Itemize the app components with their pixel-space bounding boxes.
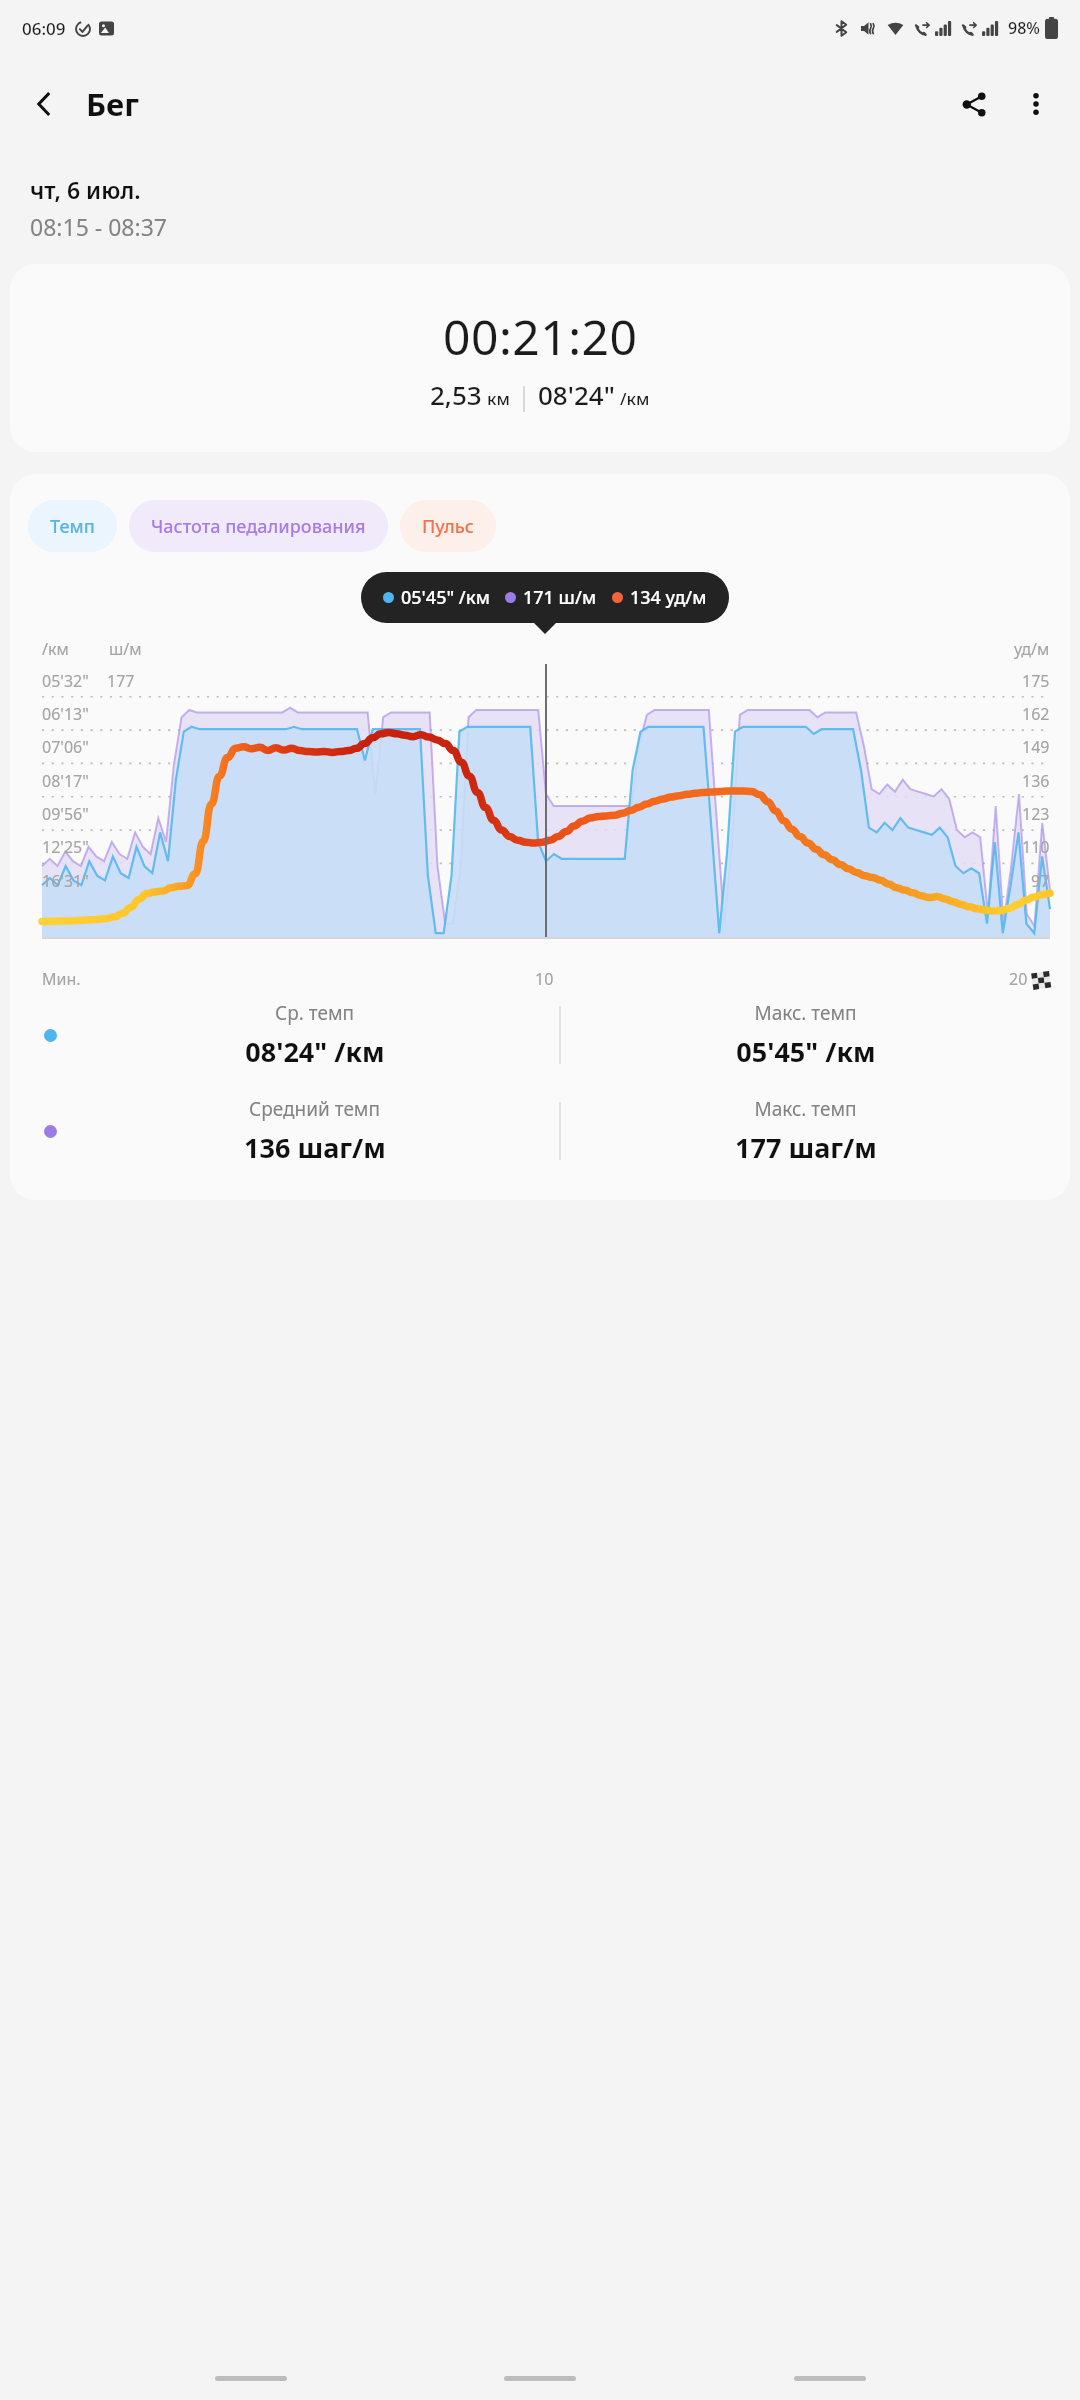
- staticText: 12'25": [42, 836, 89, 858]
- staticText: уд/м: [1014, 638, 1050, 660]
- staticText: Макс. темп: [754, 1096, 857, 1122]
- staticText: 16'31": [42, 870, 89, 892]
- staticText: ш/м: [109, 638, 142, 660]
- staticText: км: [487, 387, 510, 410]
- staticText: 06:09: [22, 17, 66, 40]
- staticText: 00:21:20: [443, 304, 638, 369]
- staticText: чт, 6 июл.: [30, 174, 141, 205]
- staticText: 177: [107, 670, 135, 692]
- staticText: 97: [1031, 870, 1050, 892]
- button[interactable]: Ср. темп: [10, 1000, 1070, 1070]
- staticText: 123: [1022, 803, 1050, 825]
- button[interactable]: Средний темп: [10, 1096, 1070, 1166]
- staticText: Мин.: [42, 968, 81, 990]
- button[interactable]: More options: [1008, 76, 1064, 132]
- staticText: 136 шаг/м: [244, 1129, 386, 1166]
- button[interactable]: Navigation: [791, 2367, 869, 2389]
- staticText: 177 шаг/м: [735, 1129, 877, 1166]
- staticText: 08:15 - 08:37: [30, 211, 167, 242]
- staticText: 149: [1022, 736, 1050, 758]
- staticText: 2,53: [430, 377, 482, 412]
- staticText: 05'45" /км: [401, 585, 490, 610]
- staticText: 05'32": [42, 670, 89, 692]
- staticText: 98%: [1008, 17, 1040, 39]
- button[interactable]: 00:21:20: [10, 264, 1070, 452]
- staticText: Пульс: [422, 514, 474, 539]
- staticText: Ср. темп: [275, 1000, 354, 1026]
- staticText: 134 уд/м: [630, 585, 707, 610]
- staticText: Частота педалирования: [151, 514, 366, 539]
- button[interactable]: Share: [946, 76, 1002, 132]
- staticText: Макс. темп: [754, 1000, 857, 1026]
- staticText: 20: [1009, 968, 1028, 990]
- staticText: 10: [535, 968, 554, 990]
- staticText: 162: [1022, 703, 1050, 725]
- staticText: 07'06": [42, 736, 89, 758]
- staticText: /км: [42, 638, 69, 660]
- staticText: 171 ш/м: [523, 585, 597, 610]
- staticText: 08'24": [538, 377, 615, 412]
- staticText: Темп: [50, 514, 95, 539]
- button[interactable]: Темп: [28, 500, 117, 552]
- staticText: 110: [1022, 836, 1050, 858]
- staticText: 06'13": [42, 703, 89, 725]
- button[interactable]: Пульс: [400, 500, 496, 552]
- staticText: 09'56": [42, 803, 89, 825]
- button[interactable]: Navigation: [212, 2367, 290, 2389]
- staticText: 08'17": [42, 770, 89, 792]
- staticText: Бег: [86, 83, 139, 125]
- staticText: 08'24" /км: [245, 1033, 385, 1070]
- staticText: 05'45" /км: [736, 1033, 876, 1070]
- staticText: Средний темп: [249, 1096, 380, 1122]
- staticText: 136: [1022, 770, 1050, 792]
- staticText: /км: [620, 387, 650, 410]
- staticText: 175: [1022, 670, 1050, 692]
- button[interactable]: Back: [16, 76, 72, 132]
- button[interactable]: Частота педалирования: [129, 500, 388, 552]
- button[interactable]: Navigation: [501, 2367, 579, 2389]
